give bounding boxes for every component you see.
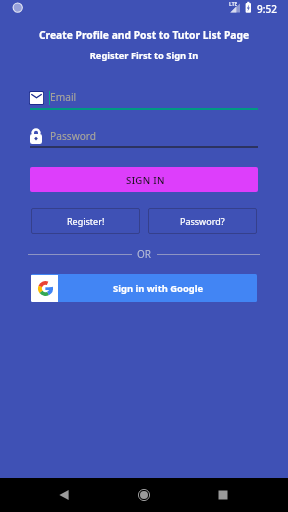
button[interactable]: Email input field <box>30 86 258 110</box>
staticText: Password? <box>180 215 225 227</box>
staticText: OR <box>137 247 152 261</box>
button[interactable]: Recent apps <box>199 478 247 512</box>
staticText: SIGN IN <box>126 174 165 187</box>
button[interactable]: Sign in with Google <box>31 274 257 302</box>
staticText: Sign in with Google <box>113 282 204 295</box>
staticText: Create Profile and Post to Tutor List Pa… <box>0 28 288 42</box>
staticText: Register First to Sign In <box>0 49 288 62</box>
button[interactable]: SIGN IN <box>30 167 258 192</box>
staticText: Email <box>50 90 77 104</box>
staticText: Register! <box>67 215 105 227</box>
staticText: LTE <box>229 1 238 8</box>
staticText: Password <box>50 129 97 143</box>
staticText: 9:52 <box>257 2 277 16</box>
button[interactable]: Register! <box>31 208 140 234</box>
button[interactable]: Back <box>40 478 88 512</box>
button[interactable]: Password input field <box>30 125 258 148</box>
button[interactable]: Password? <box>148 208 257 234</box>
button[interactable]: Home <box>120 478 168 512</box>
